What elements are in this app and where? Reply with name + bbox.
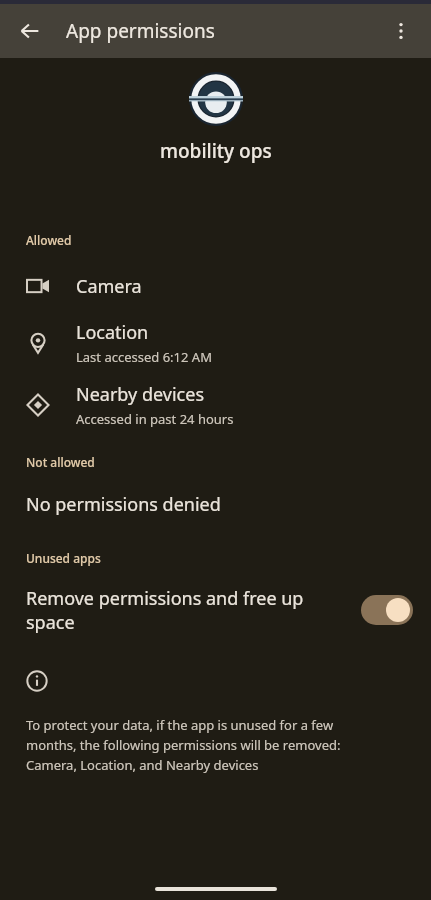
button[interactable]: Remove permissions toggle <box>361 595 413 625</box>
button[interactable]: More options <box>379 9 423 53</box>
staticText: App permissions <box>66 18 215 44</box>
staticText: Camera <box>76 274 142 299</box>
staticText: mobility ops <box>160 138 272 164</box>
staticText: Not allowed <box>26 454 95 470</box>
button[interactable]: Remove permissions and free up space <box>0 580 431 640</box>
staticText: Last accessed 6:12 AM <box>76 348 212 366</box>
staticText: No permissions denied <box>26 492 221 517</box>
button[interactable]: Camera <box>0 260 431 312</box>
staticText: Unused apps <box>26 550 101 566</box>
staticText: Allowed <box>26 232 72 248</box>
staticText: To protect your data, if the app is unus… <box>26 716 381 774</box>
button[interactable]: Nearby devices <box>0 374 431 436</box>
staticText: Location <box>76 320 149 345</box>
staticText: Accessed in past 24 hours <box>76 410 234 428</box>
button[interactable]: Location <box>0 312 431 374</box>
staticText: Remove permissions and free up space <box>26 586 343 634</box>
staticText: Nearby devices <box>76 382 204 407</box>
button[interactable]: Back <box>8 9 52 53</box>
